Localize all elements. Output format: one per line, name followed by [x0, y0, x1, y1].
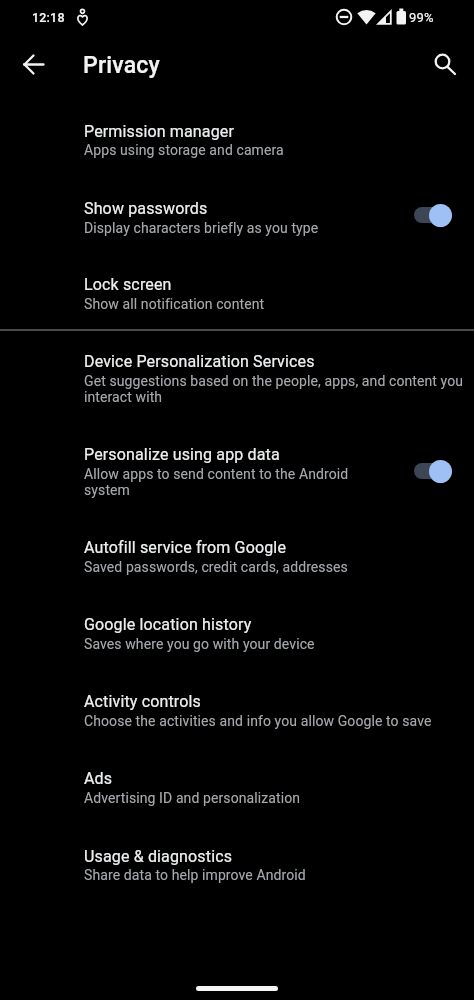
staticText: interact with — [84, 389, 163, 405]
staticText: 12:18 — [32, 10, 65, 25]
staticText: Saves where you go with your device — [84, 636, 315, 652]
staticText: Lock screen — [84, 275, 172, 294]
staticText: Device Personalization Services — [84, 352, 315, 371]
staticText: Allow apps to send content to the Androi… — [84, 466, 349, 482]
staticText: Display characters briefly as you type — [84, 220, 319, 236]
staticText: Google location history — [84, 615, 252, 634]
staticText: Get suggestions based on the people, app… — [84, 373, 464, 389]
staticText: 99% — [409, 10, 434, 25]
staticText: Privacy — [83, 52, 161, 79]
staticText: Advertising ID and personalization — [84, 790, 301, 806]
staticText: Show all notification content — [84, 296, 265, 312]
staticText: Share data to help improve Android — [84, 867, 306, 883]
staticText: Ads — [84, 769, 113, 788]
staticText: Apps using storage and camera — [84, 142, 284, 158]
staticText: Saved passwords, credit cards, addresses — [84, 559, 348, 575]
staticText: Autofill service from Google — [84, 538, 287, 557]
staticText: Permission manager — [84, 122, 235, 141]
staticText: Choose the activities and info you allow… — [84, 713, 432, 729]
staticText: system — [84, 482, 130, 498]
staticText: Usage & diagnostics — [84, 847, 233, 866]
staticText: Activity controls — [84, 692, 202, 711]
staticText: Personalize using app data — [84, 445, 280, 464]
staticText: Show passwords — [84, 199, 208, 218]
